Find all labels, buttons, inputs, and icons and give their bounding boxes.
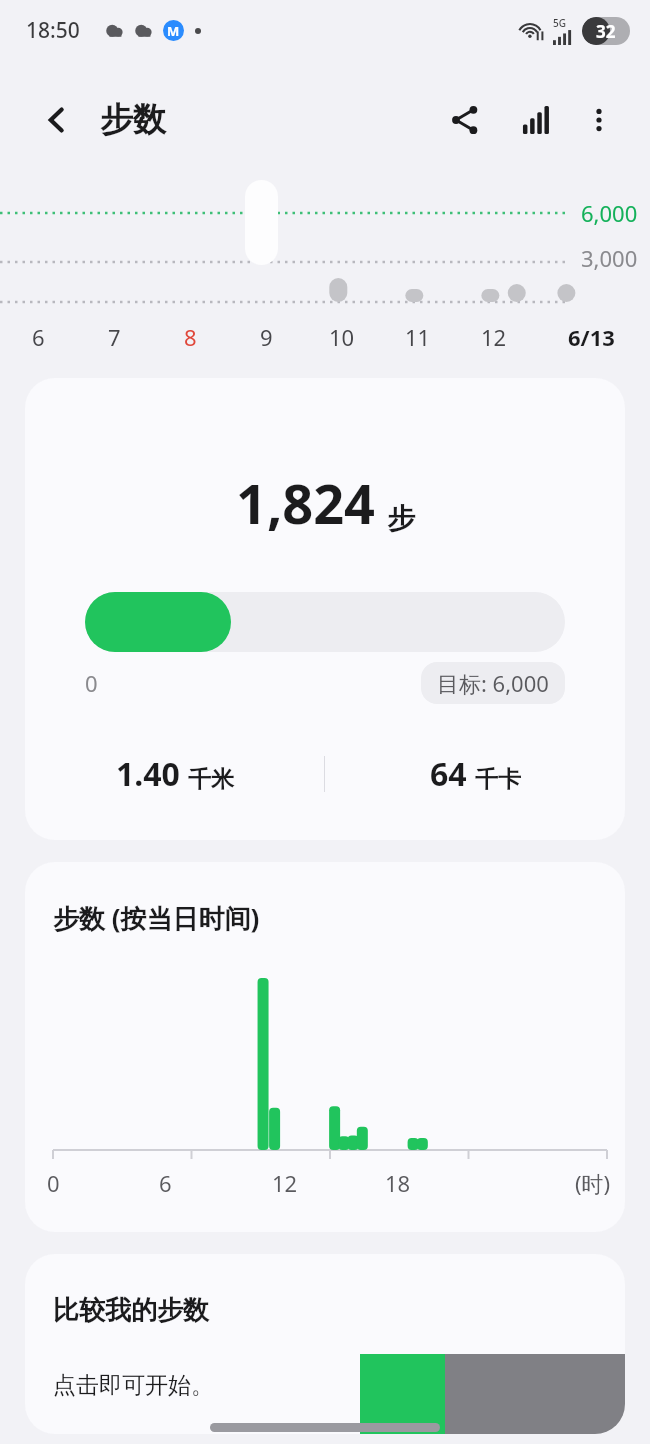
staticText: 11 xyxy=(405,322,431,352)
button[interactable]: More options xyxy=(570,91,628,149)
staticText: 千卡 xyxy=(475,765,521,794)
button[interactable]: 步数 (按当日时间) xyxy=(25,862,625,1232)
button[interactable]: Share xyxy=(436,91,494,149)
staticText: 目标: 6,000 xyxy=(437,668,549,698)
staticText: 12 xyxy=(481,322,507,352)
staticText: 步数 (按当日时间) xyxy=(53,900,260,936)
staticText: (时) xyxy=(575,1168,611,1198)
staticText: 7 xyxy=(108,322,121,352)
staticText: 0 xyxy=(47,1168,60,1198)
staticText: 12 xyxy=(272,1168,298,1198)
staticText: 0 xyxy=(85,668,98,698)
staticText: 6 xyxy=(159,1168,172,1198)
staticText: 64 xyxy=(430,752,467,796)
staticText: 6,000 xyxy=(581,198,638,228)
staticText: 步 xyxy=(387,501,415,536)
staticText: 32 xyxy=(596,20,616,43)
staticText: 3,000 xyxy=(581,243,638,273)
staticText: 5G xyxy=(553,16,566,30)
staticText: 点击即可开始。 xyxy=(53,1371,214,1400)
button[interactable]: 比较我的步数 xyxy=(25,1254,625,1434)
button[interactable]: Chart xyxy=(506,91,564,149)
staticText: M xyxy=(167,22,180,40)
button[interactable]: Back xyxy=(32,95,82,145)
staticText: 千米 xyxy=(188,765,234,794)
staticText: 10 xyxy=(329,322,355,352)
button[interactable] xyxy=(245,180,278,265)
staticText: 8 xyxy=(184,322,197,352)
button[interactable]: 1,824 xyxy=(25,378,625,840)
staticText: 9 xyxy=(260,322,273,352)
staticText: 6 xyxy=(32,322,45,352)
staticText: 18 xyxy=(385,1168,411,1198)
staticText: 1,824 xyxy=(236,466,375,540)
staticText: 比较我的步数 xyxy=(53,1294,209,1327)
staticText: 步数 xyxy=(100,99,166,141)
staticText: 18:50 xyxy=(26,16,80,45)
staticText: 1.40 xyxy=(116,752,180,796)
staticText: 6/13 xyxy=(568,322,615,352)
